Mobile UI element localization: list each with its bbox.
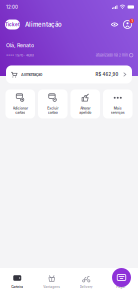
staticText: Olá, Renato (6, 42, 34, 48)
staticText: serviços (111, 110, 125, 114)
button[interactable]: Delivery (69, 268, 103, 300)
button[interactable]: Pagar (112, 268, 131, 287)
staticText: 1 (131, 19, 132, 23)
button[interactable]: Alimentação (6, 65, 132, 83)
button[interactable]: Pagar (103, 268, 138, 300)
staticText: Vantagens (43, 285, 60, 289)
staticText: Alimentação (25, 21, 62, 28)
button[interactable]: Alterar (70, 89, 100, 118)
staticText: Delivery (80, 285, 93, 289)
staticText: Alterar (80, 106, 90, 110)
staticText: cartão (48, 110, 58, 114)
staticText: •••• 1976 · 40xx (6, 53, 34, 57)
staticText: R$ 462,90 (95, 72, 118, 77)
staticText: Carteira (11, 285, 23, 289)
staticText: 12:00 (6, 4, 18, 10)
button[interactable]: Excluir (38, 89, 67, 118)
staticText: cartão (15, 110, 25, 114)
button[interactable]: Mais (103, 89, 132, 118)
staticText: Adicionar (13, 106, 28, 110)
staticText: Alimentação (21, 72, 42, 77)
button[interactable]: Vantagens (34, 268, 69, 300)
button[interactable]: Perfil e notificações (121, 18, 134, 31)
staticText: Ticket (5, 22, 20, 27)
staticText: Excluir (47, 106, 58, 110)
staticText: apelido (79, 110, 91, 114)
button[interactable]: Adicionar (5, 89, 35, 118)
staticText: Pagar (116, 285, 125, 289)
staticText: Mais (114, 106, 122, 110)
staticText: atualizado há 2 min (96, 53, 128, 57)
button[interactable]: Mostrar saldo (108, 18, 121, 31)
button[interactable]: Carteira (0, 268, 34, 300)
